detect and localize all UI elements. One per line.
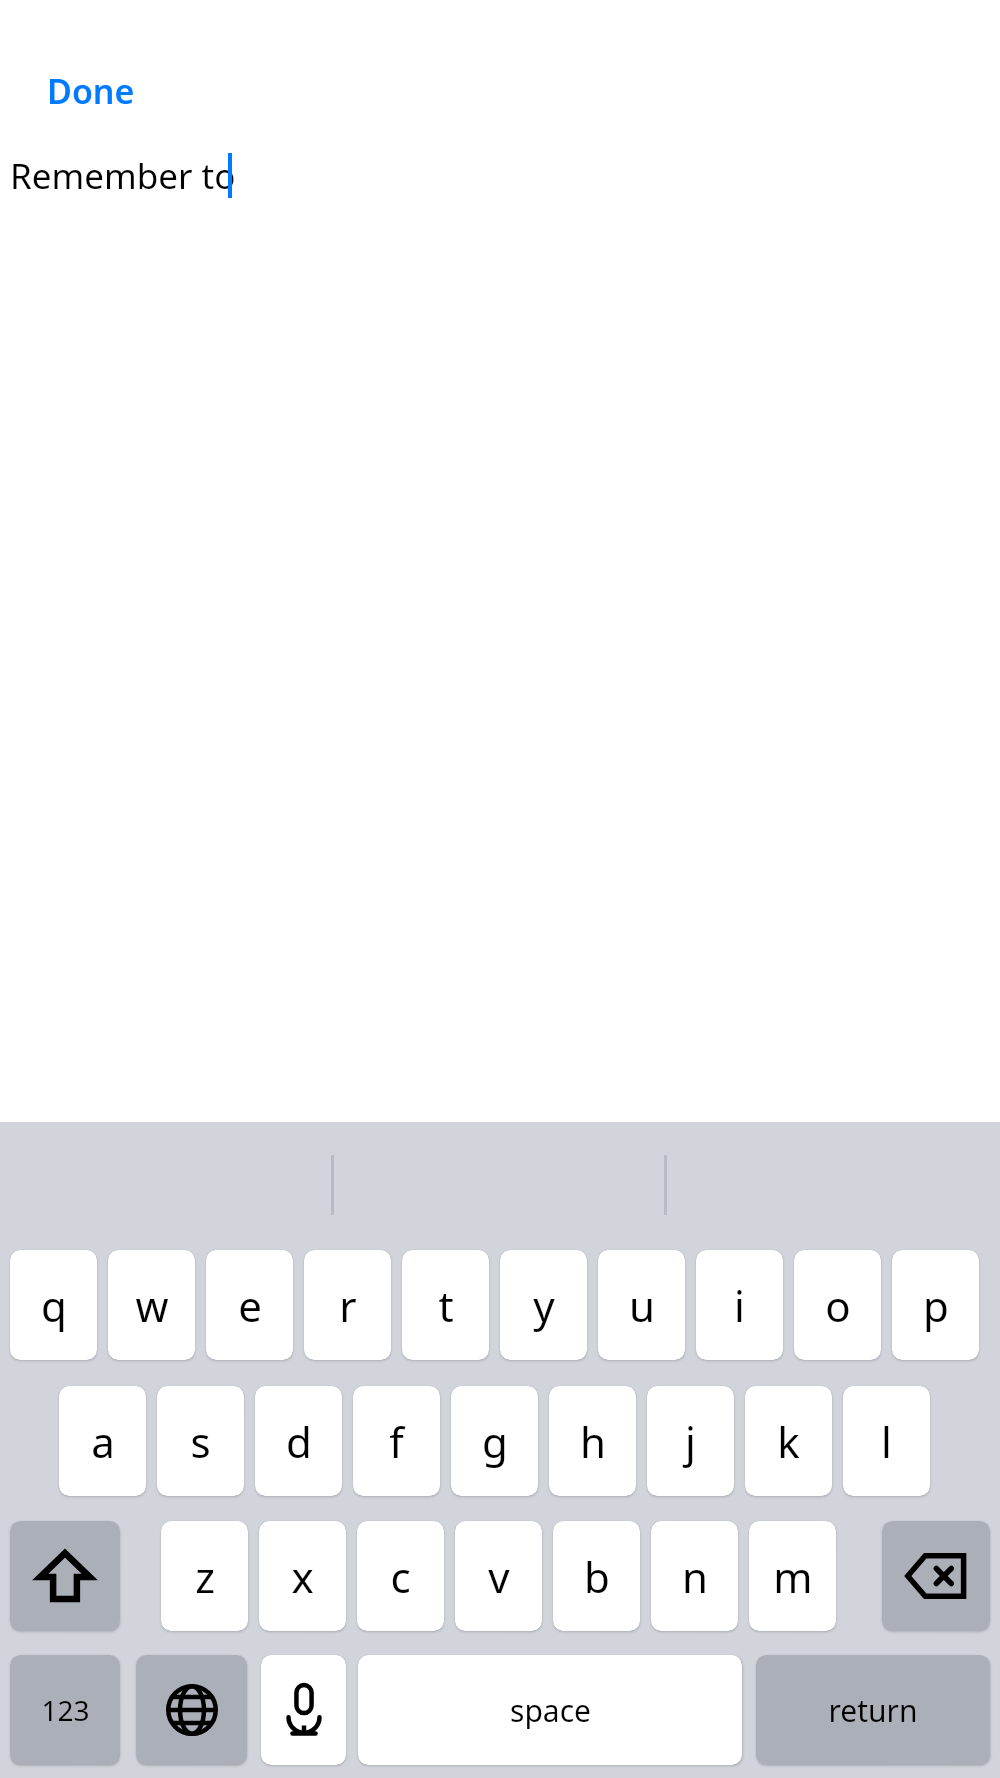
staticText: Remember to (10, 152, 236, 200)
staticText: j (685, 1413, 696, 1470)
button[interactable]: a (59, 1386, 146, 1496)
button[interactable]: m (749, 1521, 836, 1631)
button[interactable]: v (455, 1521, 542, 1631)
button[interactable]: space (358, 1655, 742, 1765)
staticText: i (734, 1277, 745, 1334)
staticText: t (438, 1277, 454, 1334)
button[interactable]: r (304, 1250, 391, 1360)
button[interactable]: return (756, 1655, 990, 1765)
staticText: n (682, 1548, 708, 1605)
button[interactable]: e (206, 1250, 293, 1360)
staticText: m (773, 1548, 813, 1605)
staticText: p (923, 1277, 949, 1334)
button[interactable]: Dictate (261, 1655, 346, 1765)
button[interactable]: q (10, 1250, 97, 1360)
button[interactable]: Backspace (882, 1521, 990, 1631)
staticText: o (825, 1277, 851, 1334)
staticText: b (584, 1548, 610, 1605)
button[interactable]: n (651, 1521, 738, 1631)
button[interactable]: 123 (10, 1655, 120, 1765)
button[interactable]: k (745, 1386, 832, 1496)
staticText: a (91, 1413, 115, 1470)
staticText: return (828, 1690, 918, 1731)
staticText: space (510, 1690, 591, 1731)
staticText: d (286, 1413, 312, 1470)
staticText: 123 (41, 1691, 90, 1729)
staticText: k (777, 1413, 800, 1470)
staticText: r (339, 1277, 357, 1334)
button[interactable]: x (259, 1521, 346, 1631)
button[interactable]: p (892, 1250, 979, 1360)
button[interactable]: o (794, 1250, 881, 1360)
staticText: x (291, 1548, 314, 1605)
staticText: Done (47, 68, 135, 114)
button[interactable]: y (500, 1250, 587, 1360)
button[interactable]: i (696, 1250, 783, 1360)
staticText: w (135, 1277, 169, 1334)
staticText: e (238, 1277, 262, 1334)
button[interactable]: j (647, 1386, 734, 1496)
button[interactable]: h (549, 1386, 636, 1496)
staticText: c (390, 1548, 411, 1605)
staticText: y (533, 1277, 555, 1334)
staticText: g (482, 1413, 508, 1470)
button[interactable]: u (598, 1250, 685, 1360)
staticText: z (195, 1548, 215, 1605)
staticText: u (629, 1277, 655, 1334)
staticText: l (881, 1413, 892, 1470)
button[interactable]: c (357, 1521, 444, 1631)
staticText: h (580, 1413, 606, 1470)
button[interactable]: Next keyboard (136, 1655, 247, 1765)
staticText: f (389, 1413, 404, 1470)
button[interactable]: s (157, 1386, 244, 1496)
button[interactable]: Shift (10, 1521, 120, 1631)
button[interactable]: d (255, 1386, 342, 1496)
button[interactable]: f (353, 1386, 440, 1496)
button[interactable]: z (161, 1521, 248, 1631)
staticText: q (41, 1277, 67, 1334)
button[interactable]: l (843, 1386, 930, 1496)
button[interactable]: t (402, 1250, 489, 1360)
staticText: s (190, 1413, 211, 1470)
button[interactable]: g (451, 1386, 538, 1496)
button[interactable]: w (108, 1250, 195, 1360)
button[interactable]: Done (28, 60, 152, 122)
button[interactable]: b (553, 1521, 640, 1631)
staticText: v (488, 1548, 510, 1605)
